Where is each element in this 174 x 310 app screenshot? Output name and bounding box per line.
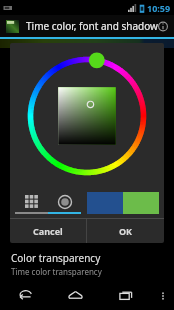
staticText: OK [119, 225, 133, 237]
button[interactable]: More options [152, 281, 174, 310]
button[interactable]: OK [87, 219, 164, 243]
button[interactable]: Wheel tab [48, 192, 81, 214]
button[interactable]: Home [50, 281, 101, 310]
button[interactable]: Back [0, 281, 50, 310]
button[interactable]: Color transparency [0, 251, 174, 281]
staticText: Time color, font and shadow [26, 19, 158, 33]
button[interactable]: Time color, font and shadow [0, 15, 174, 37]
staticText: Color transparency [11, 251, 101, 265]
button[interactable]: Info [158, 17, 168, 35]
staticText: Cancel [33, 225, 63, 237]
staticText: 10:59 [147, 2, 171, 14]
button[interactable]: Recents [101, 281, 152, 310]
button[interactable]: Palette tab [15, 192, 48, 214]
button[interactable]: Cancel [10, 219, 86, 243]
staticText: Time color transparency [11, 266, 102, 277]
